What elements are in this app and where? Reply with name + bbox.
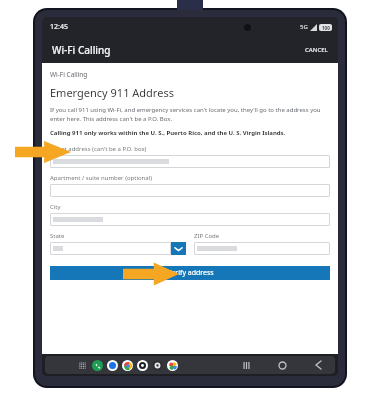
staticText: Verify address: [167, 268, 214, 278]
button[interactable]: CANCEL: [299, 42, 334, 58]
button[interactable]: App: [92, 360, 103, 371]
button[interactable]: [194, 242, 330, 255]
button[interactable]: Home: [275, 358, 289, 372]
button[interactable]: [50, 213, 330, 226]
staticText: Emergency 911 Address: [50, 85, 174, 100]
staticText: City: [50, 203, 61, 211]
button[interactable]: [50, 242, 171, 255]
staticText: Wi-Fi Calling: [52, 43, 111, 57]
staticText: CANCEL: [305, 46, 328, 54]
button[interactable]: App: [167, 360, 178, 371]
staticText: 12:45: [50, 22, 68, 32]
button[interactable]: [50, 184, 330, 197]
button[interactable]: Verify address: [50, 266, 330, 280]
staticText: 5G: [300, 23, 308, 31]
staticText: Wi-Fi Calling: [50, 70, 88, 79]
staticText: ZIP Code: [194, 232, 220, 240]
button[interactable]: Select state: [171, 242, 186, 255]
staticText: 100: [322, 25, 330, 31]
staticText: State: [50, 232, 65, 240]
button[interactable]: [50, 155, 330, 168]
button[interactable]: Back: [311, 358, 325, 372]
button[interactable]: Recent apps: [239, 358, 253, 372]
button[interactable]: App: [152, 360, 163, 371]
staticText: If you call 911 using Wi-Fi, and emergen…: [50, 106, 330, 123]
button[interactable]: App: [137, 360, 148, 371]
staticText: Street address (can't be a P.O. box): [50, 145, 147, 153]
staticText: Calling 911 only works within the U. S.,…: [50, 129, 286, 137]
staticText: Apartment / suite number (optional): [50, 174, 153, 182]
button[interactable]: App: [107, 360, 118, 371]
button[interactable]: App: [122, 360, 133, 371]
button[interactable]: All apps: [77, 360, 88, 371]
